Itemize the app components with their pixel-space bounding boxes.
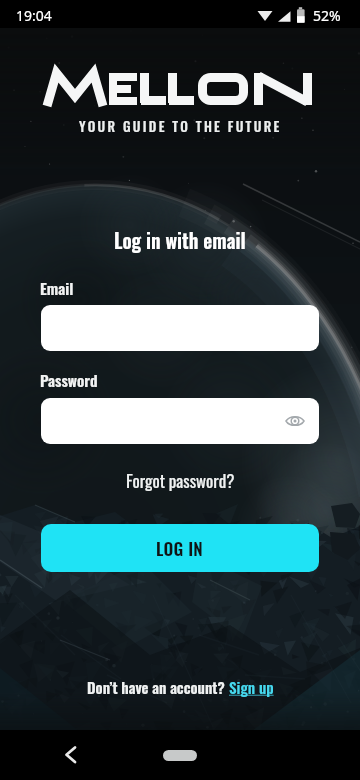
button[interactable]: Sign up [229,676,274,698]
staticText: LOG IN [156,536,204,561]
staticText: Email [40,277,74,300]
staticText: Log in with email [114,226,246,255]
staticText: YOUR GUIDE TO THE FUTURE [79,116,282,136]
staticText: 52% [313,6,341,25]
button[interactable] [41,398,319,444]
staticText: 19:04 [16,6,52,25]
button[interactable]: Forgot password? [126,468,235,493]
button[interactable]: LOG IN [41,524,319,572]
staticText: Password [40,369,98,392]
button[interactable] [41,305,319,351]
button[interactable] [163,750,197,761]
staticText: Don’t have an account? [87,676,229,698]
button[interactable] [56,740,86,770]
